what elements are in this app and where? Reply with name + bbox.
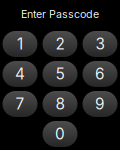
button[interactable]: 0 <box>42 121 77 147</box>
button[interactable]: 2 <box>42 31 77 57</box>
staticText: 7 <box>15 95 24 113</box>
staticText: 5 <box>55 65 64 83</box>
staticText: 2 <box>55 35 64 53</box>
button[interactable]: 9 <box>82 91 117 117</box>
button[interactable]: 7 <box>2 91 37 117</box>
staticText: 9 <box>95 95 105 113</box>
button[interactable]: 5 <box>42 61 77 87</box>
staticText: 4 <box>15 65 25 83</box>
staticText: 8 <box>55 95 64 113</box>
button[interactable]: 3 <box>82 31 117 57</box>
staticText: 3 <box>95 35 104 53</box>
button[interactable]: 1 <box>2 31 37 57</box>
staticText: 6 <box>95 65 105 83</box>
button[interactable]: 6 <box>82 61 117 87</box>
button[interactable]: 8 <box>42 91 77 117</box>
staticText: 0 <box>55 125 65 143</box>
button[interactable]: 4 <box>2 61 37 87</box>
staticText: 1 <box>17 35 23 53</box>
staticText: Enter Passcode <box>21 7 99 20</box>
